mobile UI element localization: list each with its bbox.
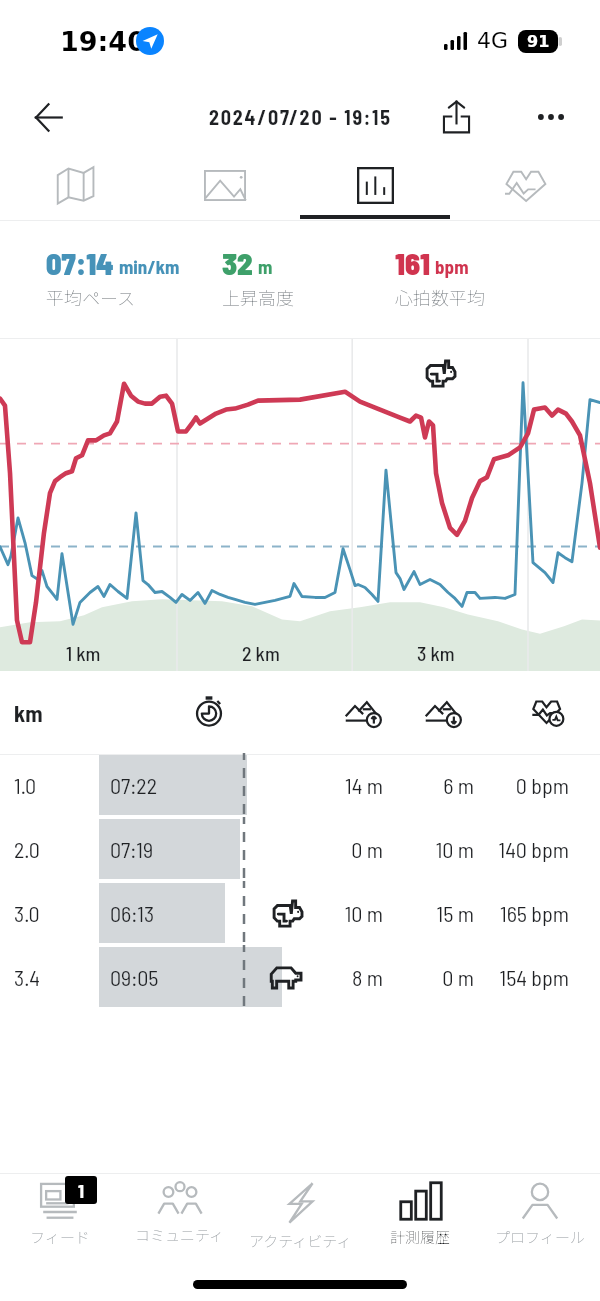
button[interactable]: 1 [0, 1174, 120, 1257]
staticText: bpm [435, 255, 469, 278]
staticText: 07:19 [110, 836, 154, 862]
staticText: 91 [527, 32, 550, 51]
staticText: 161 [395, 245, 430, 281]
staticText: 2.0 [14, 836, 40, 862]
staticText: 06:13 [110, 900, 155, 926]
staticText: 0 bpm [0, 772, 569, 798]
staticText: 140 bpm [0, 836, 569, 862]
staticText: 1 [78, 1179, 85, 1202]
staticText: 計測履歴 [390, 1226, 451, 1248]
staticText: 平均ペース [46, 284, 136, 310]
button[interactable]: 3.4 [0, 947, 600, 1007]
staticText: 09:05 [110, 964, 159, 990]
button[interactable]: プロフィール [480, 1174, 600, 1257]
button[interactable]: 3.0 [0, 883, 600, 943]
button[interactable]: 1.0 [0, 755, 600, 815]
staticText: m [258, 255, 273, 278]
staticText: 3 km [417, 641, 455, 665]
staticText: 3.4 [14, 964, 40, 990]
button[interactable]: Share [427, 88, 485, 146]
staticText: 10 m [0, 900, 383, 926]
staticText: 07:14 [46, 245, 114, 281]
staticText: プロフィール [495, 1226, 585, 1248]
button[interactable]: Photos [150, 150, 300, 220]
staticText: 0 m [0, 964, 474, 990]
button[interactable]: Heart rate [450, 150, 600, 220]
button[interactable]: コミュニティ [120, 1174, 240, 1257]
staticText: コミュニティ [135, 1224, 225, 1246]
staticText: km [14, 699, 43, 727]
staticText: 07:22 [110, 772, 157, 798]
staticText: 8 m [0, 964, 383, 990]
staticText: 154 bpm [0, 964, 569, 990]
staticText: フィード [30, 1226, 90, 1248]
staticText: 上昇高度 [222, 284, 294, 310]
staticText: 14 m [0, 772, 383, 798]
staticText: 2 km [242, 641, 280, 665]
button[interactable]: Map [0, 150, 150, 220]
staticText: 165 bpm [0, 900, 569, 926]
staticText: 2024/07/20 - 19:15 [209, 105, 392, 129]
staticText: アクティビティ [249, 1230, 352, 1252]
staticText: 15 m [0, 900, 474, 926]
staticText: 1.0 [14, 772, 37, 798]
staticText: 19:40 [60, 26, 146, 57]
staticText: 32 [222, 245, 253, 281]
staticText: 10 m [0, 836, 474, 862]
staticText: 3.0 [14, 900, 40, 926]
button[interactable]: 2.0 [0, 819, 600, 879]
button[interactable]: Back [19, 88, 77, 146]
staticText: 4G [477, 28, 509, 54]
staticText: min/km [119, 255, 180, 278]
staticText: 6 m [0, 772, 474, 798]
staticText: 心拍数平均 [395, 284, 485, 310]
staticText: 0 m [0, 836, 383, 862]
button[interactable]: 計測履歴 [360, 1174, 480, 1257]
button[interactable]: アクティビティ [240, 1174, 360, 1257]
button[interactable]: More options [522, 88, 580, 146]
button[interactable]: Charts [300, 150, 450, 220]
staticText: 1 km [66, 641, 101, 665]
